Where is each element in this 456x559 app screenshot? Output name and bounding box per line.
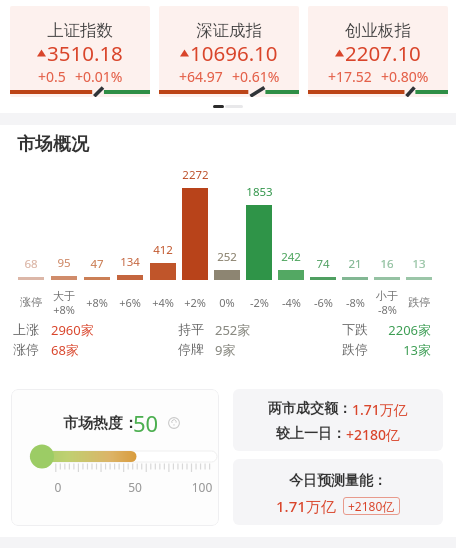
staticText: +4%: [152, 295, 174, 310]
button[interactable]: 今日预测量能：: [233, 459, 443, 525]
staticText: 跌停: [342, 341, 368, 357]
staticText: 47: [90, 256, 104, 272]
staticText: +0.61%: [232, 67, 280, 86]
staticText: 10696.10: [190, 39, 278, 67]
staticText: 今日预测量能：: [289, 472, 387, 490]
staticText: 242: [281, 249, 301, 265]
staticText: 134: [120, 254, 140, 270]
staticText: +6%: [119, 295, 141, 310]
staticText: 68: [24, 256, 38, 272]
staticText: 停牌: [178, 341, 204, 357]
staticText: -8%: [346, 295, 365, 310]
staticText: +8%: [53, 302, 75, 317]
staticText: 2272: [182, 167, 209, 183]
staticText: 两市成交额：: [268, 400, 352, 418]
staticText: 412: [153, 242, 173, 258]
staticText: +8%: [86, 295, 108, 310]
staticText: +0.01%: [75, 67, 123, 86]
button[interactable]: 上证指数: [10, 6, 150, 97]
staticText: 16: [380, 256, 394, 272]
staticText: -2%: [250, 295, 269, 310]
button[interactable]: 市场热度：: [11, 389, 219, 526]
staticText: 跌停: [408, 295, 430, 309]
staticText: 市场热度：: [63, 414, 138, 433]
staticText: 50: [133, 408, 159, 438]
staticText: +0.5: [38, 67, 66, 86]
staticText: 持平: [178, 321, 204, 337]
staticText: 95: [57, 255, 71, 271]
staticText: 深证成指: [196, 20, 262, 41]
staticText: 2960家: [51, 321, 94, 339]
staticText: 2207.10: [345, 39, 421, 67]
staticText: 涨停: [13, 341, 39, 357]
staticText: 252: [217, 249, 237, 265]
staticText: 大于: [53, 289, 75, 303]
staticText: 0: [47, 479, 69, 495]
staticText: 252家: [215, 321, 251, 339]
staticText: +2%: [184, 295, 206, 310]
staticText: -6%: [314, 295, 333, 310]
staticText: 13家: [341, 341, 431, 359]
staticText: 2206家: [341, 321, 431, 339]
staticText: 100: [191, 479, 213, 495]
staticText: 21: [348, 256, 362, 272]
staticText: 涨停: [20, 295, 42, 309]
button[interactable]: 创业板指: [308, 6, 448, 97]
staticText: 3510.18: [47, 39, 123, 67]
staticText: 市场概况: [17, 133, 89, 156]
staticText: +0.80%: [381, 67, 429, 86]
staticText: 上证指数: [47, 20, 113, 41]
button[interactable]: 两市成交额：: [233, 389, 443, 451]
staticText: +2180亿: [348, 498, 395, 514]
staticText: 1853: [246, 184, 273, 200]
staticText: 74: [316, 256, 330, 272]
staticText: 下跌: [342, 321, 368, 337]
staticText: 13: [412, 256, 426, 272]
staticText: 9家: [215, 341, 236, 359]
staticText: 1.71万亿: [276, 496, 336, 516]
staticText: -8%: [378, 302, 397, 317]
staticText: -4%: [282, 295, 301, 310]
staticText: +2180亿: [346, 425, 401, 444]
staticText: 小于: [376, 289, 398, 303]
staticText: 创业板指: [345, 20, 411, 41]
button[interactable]: 深证成指: [159, 6, 299, 97]
staticText: 68家: [51, 341, 79, 359]
staticText: 上涨: [13, 321, 39, 337]
staticText: 0%: [219, 295, 235, 310]
staticText: +17.52: [328, 67, 372, 86]
staticText: 较上一日：: [276, 425, 346, 443]
staticText: 50: [124, 479, 146, 495]
staticText: +64.97: [179, 67, 223, 86]
staticText: 1.71万亿: [352, 400, 408, 419]
